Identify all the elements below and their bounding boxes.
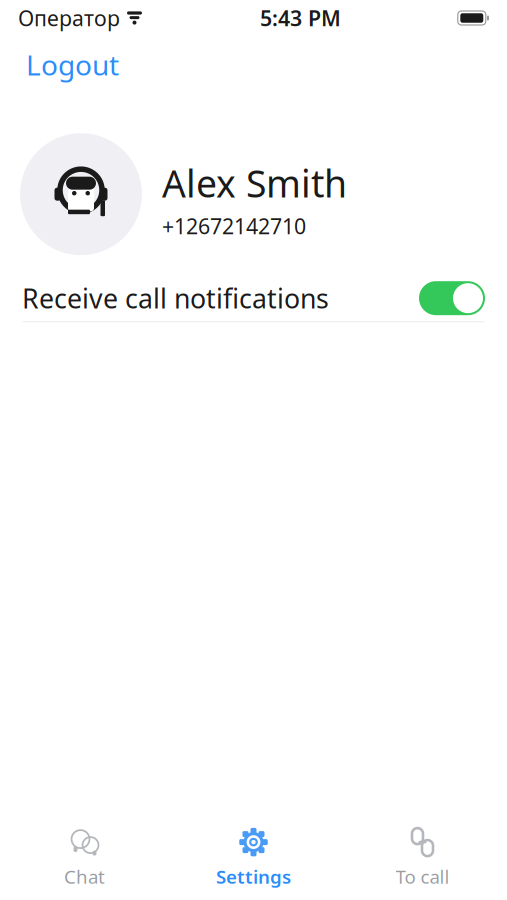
- staticText: Оператор: [18, 4, 120, 32]
- button[interactable]: Chat: [0, 819, 169, 897]
- staticText: Chat: [64, 864, 105, 889]
- staticText: Settings: [216, 864, 291, 889]
- button[interactable]: To call: [338, 819, 507, 897]
- staticText: To call: [395, 864, 449, 889]
- staticText: Receive call notifications: [22, 280, 329, 316]
- button[interactable]: Logout: [22, 40, 123, 89]
- button[interactable]: Settings: [169, 819, 338, 897]
- staticText: +12672142710: [162, 212, 306, 240]
- staticText: Alex Smith: [162, 158, 347, 208]
- staticText: 5:43 PM: [260, 4, 341, 32]
- staticText: Logout: [26, 46, 119, 83]
- button[interactable]: Receive call notifications: [0, 275, 507, 321]
